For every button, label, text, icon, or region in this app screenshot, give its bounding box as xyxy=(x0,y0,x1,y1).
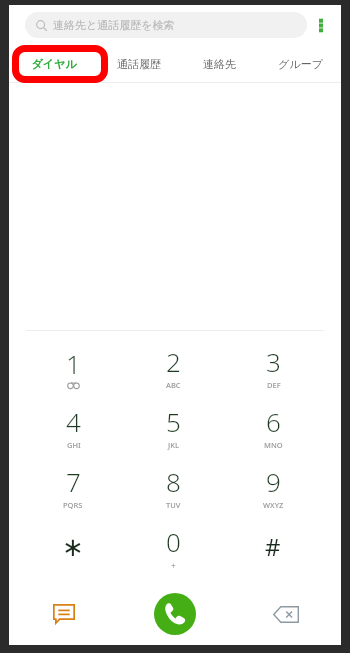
button[interactable]: ダイヤル xyxy=(9,45,98,83)
staticText: 3 xyxy=(266,344,281,379)
staticText: 8 xyxy=(166,464,181,499)
staticText: 通話履歴 xyxy=(117,57,161,71)
staticText: ABC xyxy=(166,380,181,390)
staticText: DEF xyxy=(267,380,281,390)
button[interactable]: 9 xyxy=(223,457,323,517)
button[interactable]: 連絡先と通話履歴を検索 xyxy=(25,12,307,38)
staticText: GHI xyxy=(67,440,81,450)
button[interactable]: Send message xyxy=(9,583,119,645)
staticText: JKL xyxy=(168,440,179,450)
staticText: 9 xyxy=(266,464,281,499)
staticText: ∗ xyxy=(62,532,84,562)
staticText: + xyxy=(171,560,176,571)
staticText: 4 xyxy=(66,404,81,439)
button[interactable]: 4 xyxy=(23,397,123,457)
button[interactable]: 7 xyxy=(23,457,123,517)
staticText: WXYZ xyxy=(263,500,284,510)
staticText: 6 xyxy=(266,404,281,439)
staticText: ダイヤル xyxy=(31,57,77,71)
button[interactable]: 2 xyxy=(123,337,223,397)
button[interactable]: 連絡先 xyxy=(179,45,260,83)
staticText: 1 xyxy=(66,346,81,381)
staticText: # xyxy=(265,530,281,563)
button[interactable]: ∗ xyxy=(23,517,123,577)
staticText: MNO xyxy=(264,440,283,450)
staticText: 7 xyxy=(66,464,81,499)
staticText: 連絡先 xyxy=(203,57,236,71)
staticText: グループ xyxy=(278,57,323,71)
button[interactable]: 6 xyxy=(223,397,323,457)
staticText: 2 xyxy=(166,344,181,379)
button[interactable]: 5 xyxy=(123,397,223,457)
button[interactable]: グループ xyxy=(260,45,341,83)
button[interactable]: 8 xyxy=(123,457,223,517)
button[interactable]: Call xyxy=(154,593,196,635)
staticText: PQRS xyxy=(63,500,83,510)
button[interactable]: Backspace xyxy=(230,583,341,645)
button[interactable]: More options xyxy=(307,5,335,45)
button[interactable]: 1 xyxy=(23,337,123,397)
staticText: 連絡先と通話履歴を検索 xyxy=(53,18,175,32)
staticText: 0 xyxy=(166,524,181,559)
staticText: TUV xyxy=(166,500,181,510)
button[interactable]: 通話履歴 xyxy=(98,45,179,83)
button[interactable]: # xyxy=(223,517,323,577)
staticText: 5 xyxy=(166,404,181,439)
button[interactable]: 0 xyxy=(123,517,223,577)
button[interactable]: 3 xyxy=(223,337,323,397)
